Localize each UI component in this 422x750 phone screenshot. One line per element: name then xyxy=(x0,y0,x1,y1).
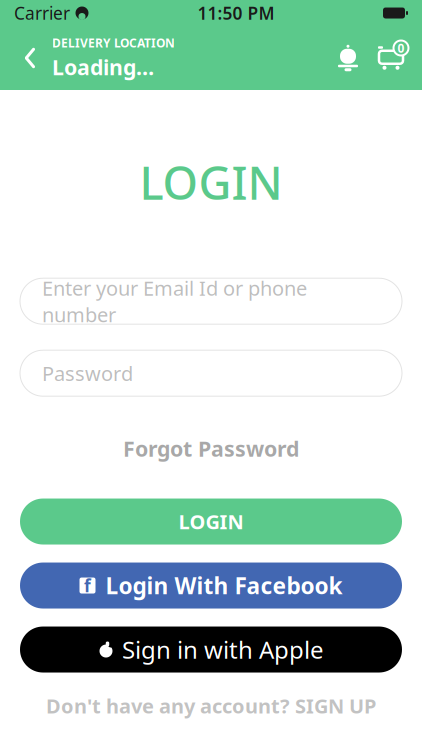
staticText: Enter your Email Id or phone number xyxy=(42,275,307,328)
button[interactable]: Back xyxy=(8,34,52,82)
button[interactable]: Sign in with Apple xyxy=(20,626,402,672)
button[interactable]: LOGIN xyxy=(20,498,402,544)
staticText: Don't have any account? SIGN UP xyxy=(46,692,376,719)
staticText: Carrier xyxy=(14,1,70,24)
staticText: Sign in with Apple xyxy=(122,634,324,665)
staticText: Password xyxy=(42,360,133,386)
staticText: LOGIN xyxy=(178,508,243,535)
button[interactable]: Forgot Password xyxy=(107,424,315,472)
button[interactable]: f xyxy=(20,562,402,608)
staticText: 11:50 PM xyxy=(197,1,274,24)
button[interactable]: Don't have any account? SIGN UP xyxy=(32,686,390,725)
staticText: Loading… xyxy=(52,53,154,81)
button[interactable]: Notifications xyxy=(328,34,368,82)
staticText: 0 xyxy=(397,40,404,56)
staticText: Login With Facebook xyxy=(105,570,342,601)
staticText: f xyxy=(84,574,91,597)
staticText: DELIVERY LOCATION xyxy=(52,35,175,51)
button[interactable]: Cart, 0 items xyxy=(368,34,414,82)
staticText: Forgot Password xyxy=(123,434,299,462)
staticText: LOGIN xyxy=(139,152,282,212)
